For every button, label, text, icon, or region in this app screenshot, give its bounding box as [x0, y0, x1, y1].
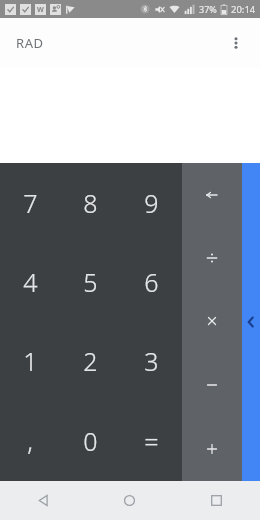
staticText: 37%	[199, 3, 217, 15]
button[interactable]: Divide	[182, 226, 242, 289]
staticText: 4	[23, 265, 38, 299]
staticText: W	[37, 5, 44, 15]
staticText: 7	[23, 186, 38, 220]
button[interactable]: Recent apps	[173, 481, 260, 520]
button[interactable]: 1	[0, 321, 60, 401]
staticText: 1	[23, 344, 38, 378]
button[interactable]: Plus	[182, 417, 242, 481]
staticText: 9	[144, 186, 159, 220]
button[interactable]: ,	[0, 401, 60, 481]
button[interactable]: 2	[60, 321, 121, 401]
staticText: 3	[144, 344, 159, 378]
button[interactable]: Home	[86, 481, 173, 520]
button[interactable]: Multiply	[182, 289, 242, 353]
staticText: ,	[27, 424, 33, 458]
button[interactable]: 0	[60, 401, 121, 481]
button[interactable]: More options	[216, 23, 256, 63]
staticText: =	[144, 424, 159, 458]
button[interactable]: =	[121, 401, 182, 481]
staticText: 8	[83, 186, 98, 220]
button[interactable]: 7	[0, 163, 60, 242]
staticText: 20:14	[231, 3, 256, 16]
button[interactable]: 8	[60, 163, 121, 242]
button[interactable]: 5	[60, 242, 121, 321]
button[interactable]: 3	[121, 321, 182, 401]
button[interactable]: Backspace	[182, 163, 242, 226]
staticText: 2	[83, 344, 98, 378]
button[interactable]: 4	[0, 242, 60, 321]
button[interactable]: 9	[121, 163, 182, 242]
button[interactable]: 6	[121, 242, 182, 321]
button[interactable]: Back	[0, 481, 86, 520]
staticText: RAD	[16, 34, 44, 52]
button[interactable]: Open advanced pad	[242, 163, 260, 481]
staticText: 0	[83, 424, 98, 458]
staticText: 6	[144, 265, 159, 299]
button[interactable]: Minus	[182, 353, 242, 417]
staticText: 5	[83, 265, 98, 299]
